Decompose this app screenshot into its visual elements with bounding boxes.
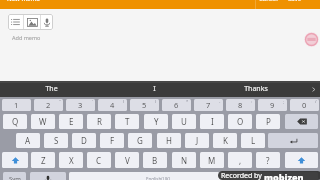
button[interactable]: X [59,152,83,168]
button[interactable]: C [87,152,111,168]
button[interactable]: U [172,114,196,129]
button[interactable]: H [157,133,181,148]
staticText: , [239,155,242,166]
button[interactable]: 1 [2,99,31,111]
button[interactable]: Voice memo [41,14,53,30]
staticText: ' [92,99,93,104]
staticText: Save [288,0,302,3]
button[interactable]: E [59,114,83,129]
button[interactable]: T [115,114,139,129]
staticText: Thanks [244,84,268,94]
button[interactable]: Shift [2,152,28,168]
button[interactable]: 2 [34,99,63,111]
staticText: T [125,116,130,127]
button[interactable]: New memo [7,0,40,3]
button[interactable]: B [143,152,167,168]
button[interactable]: 3 [66,99,95,111]
staticText: 4 [110,100,115,110]
button[interactable]: Shift [285,152,318,168]
staticText: 7 [206,100,211,110]
button[interactable]: Thanks [205,81,307,97]
button[interactable]: 6 [162,99,191,111]
staticText: * [186,99,189,104]
staticText: D [81,135,87,146]
staticText: . [266,174,268,180]
button[interactable]: 8 [226,99,255,111]
button[interactable]: K [213,133,237,148]
staticText: Add memo [12,34,41,41]
button[interactable]: G [128,133,152,148]
staticText: ( [123,99,125,104]
staticText: : [251,99,253,104]
button[interactable]: Period [251,172,283,180]
button[interactable]: Insert image [24,14,40,30]
button[interactable]: O [228,114,252,129]
button[interactable]: F [100,133,124,148]
staticText: P [266,116,271,127]
staticText: S [54,135,59,146]
staticText: 1 [14,100,19,110]
button[interactable]: W [31,114,55,129]
button[interactable]: 0 [290,99,319,111]
button[interactable]: R [87,114,111,129]
staticText: F [110,135,115,146]
staticText: 8 [238,100,243,110]
button[interactable]: 7 [194,99,223,111]
button[interactable]: I [200,114,224,129]
staticText: K [223,135,228,146]
staticText: 5 [142,100,147,110]
button[interactable]: Backspace [285,114,318,129]
button[interactable]: 5 [130,99,159,111]
button[interactable]: , [228,152,252,168]
button[interactable]: M [200,152,224,168]
button[interactable]: Y [144,114,168,129]
staticText: G [137,135,143,146]
button[interactable]: ? [256,152,280,168]
staticText: ) [155,99,157,104]
staticText: N [181,155,188,166]
button[interactable]: L [241,133,265,148]
staticText: Y [154,116,159,127]
button[interactable]: P [256,114,280,129]
staticText: J [196,135,199,146]
button[interactable]: Hide keyboard [286,172,318,180]
button[interactable]: 4 [98,99,127,111]
button[interactable]: V [115,152,139,168]
staticText: M [208,155,216,166]
staticText: Recorded by [221,171,262,180]
button[interactable]: I [103,81,205,97]
button[interactable]: Z [31,152,55,168]
button[interactable]: Space [69,172,248,180]
staticText: 9 [270,100,275,110]
button[interactable]: Checklist [8,14,23,30]
button[interactable]: Symbols [3,172,26,180]
staticText: 3 [78,100,83,110]
staticText: U [181,116,187,127]
staticText: 0 [302,100,307,110]
staticText: ▾ [300,176,304,180]
button[interactable]: Cancel [259,0,278,3]
button[interactable]: Q [3,114,27,129]
staticText: 6 [174,100,179,110]
button[interactable]: More suggestions [307,81,320,97]
button[interactable]: A [16,133,40,148]
button[interactable]: Voice input [30,172,66,180]
staticText: O [237,116,244,127]
button[interactable]: J [185,133,209,148]
button[interactable]: Save [288,0,302,3]
button[interactable]: Enter [268,133,318,148]
button[interactable]: The [0,81,103,97]
button[interactable]: D [72,133,96,148]
staticText: " [59,99,61,104]
staticText: Sym [9,175,21,180]
button[interactable]: N [172,152,196,168]
staticText: I [211,116,214,127]
staticText: H [166,135,172,146]
button[interactable]: S [44,133,68,148]
staticText: English(UK) [146,176,171,180]
staticText: New memo [7,0,40,3]
staticText: V [125,155,130,166]
staticText: R [97,116,102,127]
button[interactable]: 9 [258,99,287,111]
staticText: 2 [46,100,51,110]
